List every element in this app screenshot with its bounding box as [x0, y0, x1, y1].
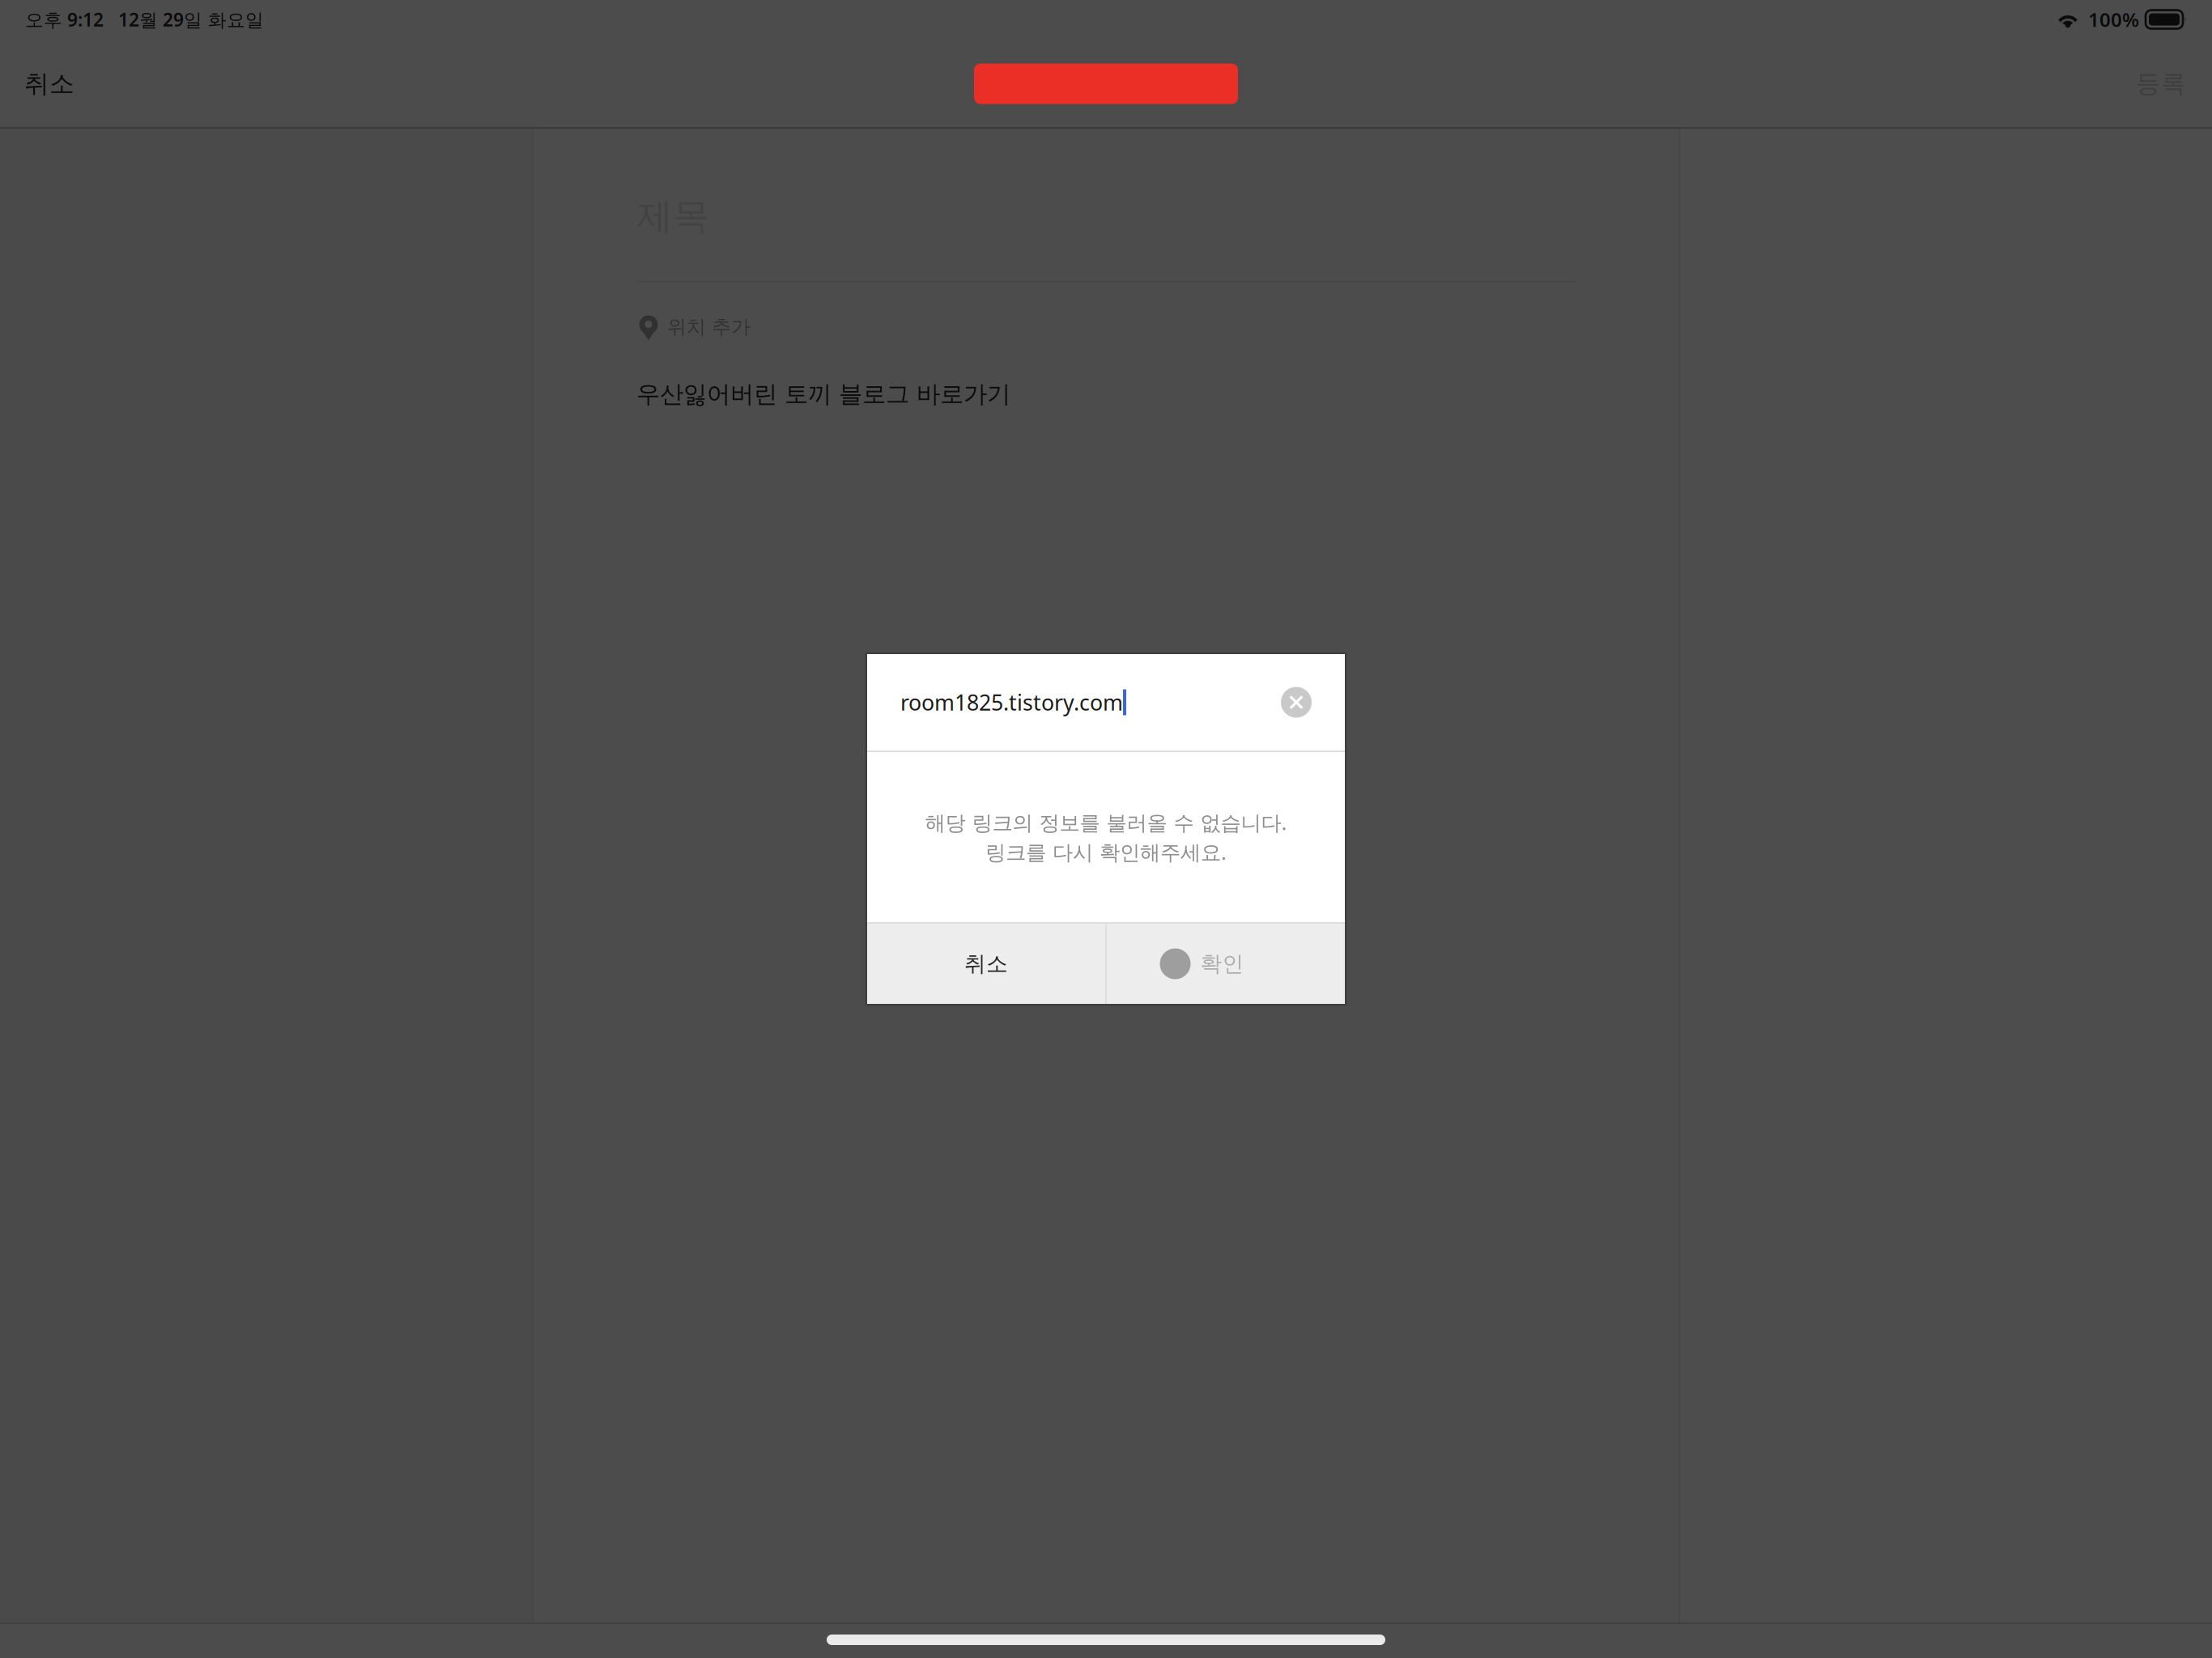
staticText: 취소	[964, 951, 1008, 977]
staticText: 100%	[2088, 7, 2139, 32]
button[interactable]: 위치 추가	[636, 283, 751, 342]
staticText: 해당 링크의 정보를 불러올 수 없습니다.	[925, 809, 1287, 836]
staticText: 등록	[2136, 69, 2186, 99]
staticText: 오후 9:12 12월 29일 화요일	[25, 7, 264, 32]
button[interactable]: 취소	[867, 924, 1105, 1004]
staticText: 우산잃어버린 토끼 블로그 바로가기	[636, 380, 1010, 409]
button[interactable]: 취소	[13, 39, 86, 129]
staticText: 링크를 다시 확인해주세요.	[985, 838, 1227, 866]
staticText: room1825.tistory.com	[900, 688, 1123, 717]
button[interactable]: Clear text	[1265, 654, 1328, 750]
staticText: 위치 추가	[667, 315, 751, 339]
button[interactable]: 확인	[1107, 924, 1345, 1004]
button[interactable]: 등록	[2125, 39, 2197, 129]
staticText: 확인	[1200, 951, 1244, 977]
staticText: 취소	[24, 69, 74, 99]
staticText: 제목	[636, 194, 709, 239]
